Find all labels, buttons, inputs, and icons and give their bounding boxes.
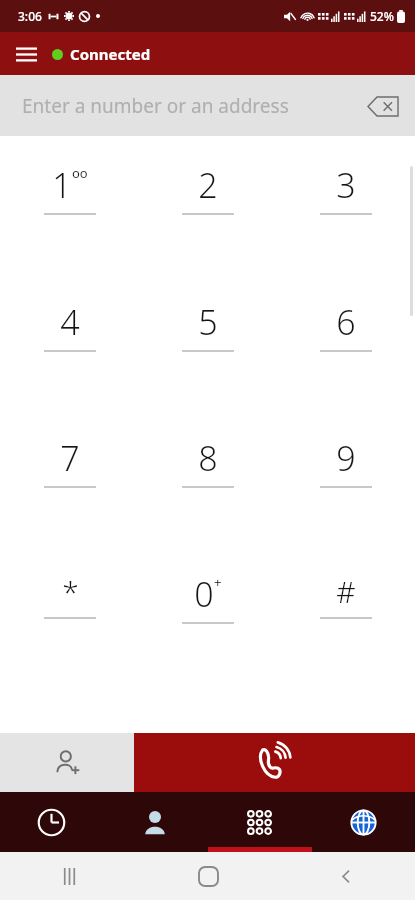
staticText: 3 (336, 162, 356, 208)
staticText: 6 (336, 299, 356, 345)
staticText: 7 (60, 435, 80, 481)
staticText: 0 (194, 571, 214, 617)
button[interactable]: 2 (139, 162, 277, 299)
button[interactable]: Add contact (0, 733, 134, 792)
staticText: # (336, 571, 356, 612)
button[interactable]: 4 (0, 299, 139, 435)
button[interactable]: Call (134, 733, 415, 792)
button[interactable]: Web (311, 792, 415, 852)
button[interactable]: 1 (0, 162, 139, 299)
button[interactable]: 7 (0, 435, 139, 571)
staticText: 2 (198, 162, 218, 208)
staticText: * (62, 571, 79, 612)
button[interactable]: # (277, 571, 415, 707)
button[interactable]: 6 (277, 299, 415, 435)
button[interactable]: 0 (139, 571, 277, 707)
staticText: 4 (60, 299, 80, 345)
staticText: Enter a number or an address (22, 93, 289, 119)
staticText: Connected (70, 44, 151, 64)
button[interactable]: Contacts (103, 792, 207, 852)
button[interactable]: Recent apps (46, 853, 92, 899)
staticText: oo (72, 164, 88, 182)
button[interactable]: Menu (8, 36, 44, 72)
staticText: 9 (336, 435, 356, 481)
button[interactable]: 5 (139, 299, 277, 435)
button[interactable]: Back (323, 853, 369, 899)
staticText: 5 (198, 299, 218, 345)
button[interactable]: Keypad (207, 792, 311, 852)
button[interactable]: Recents (0, 792, 103, 852)
button[interactable]: Backspace (361, 84, 405, 128)
staticText: + (214, 573, 222, 591)
staticText: 52% (370, 8, 394, 24)
staticText: 8 (198, 435, 218, 481)
button[interactable]: 9 (277, 435, 415, 571)
button[interactable]: 8 (139, 435, 277, 571)
staticText: 3:06 (18, 8, 42, 24)
button[interactable]: 3 (277, 162, 415, 299)
staticText: 1 (52, 162, 72, 208)
button[interactable]: Home (185, 853, 231, 899)
button[interactable]: * (0, 571, 139, 707)
